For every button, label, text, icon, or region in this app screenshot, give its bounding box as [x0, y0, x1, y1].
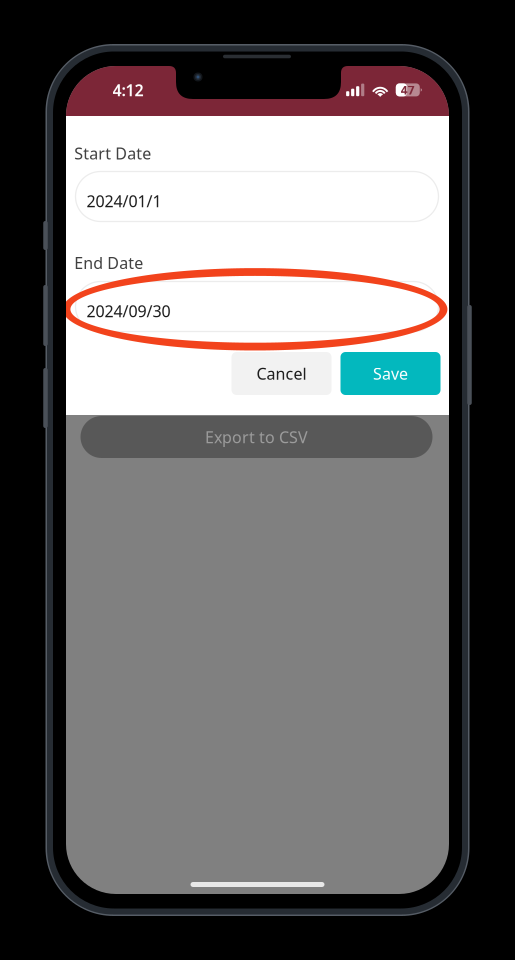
- button[interactable]: 2024/01/1: [75, 171, 438, 221]
- staticText: 2024/09/30: [86, 300, 170, 322]
- staticText: Start Date: [74, 143, 151, 164]
- button[interactable]: Save: [340, 352, 440, 395]
- staticText: 2024/01/1: [86, 190, 161, 212]
- button[interactable]: 2024/09/30: [75, 281, 438, 331]
- button[interactable]: Export to CSV: [80, 416, 432, 458]
- staticText: 47: [401, 82, 415, 98]
- staticText: 4:12: [112, 79, 143, 101]
- staticText: Save: [373, 363, 408, 384]
- button[interactable]: Cancel: [231, 352, 331, 395]
- staticText: Export to CSV: [205, 426, 308, 448]
- staticText: End Date: [74, 252, 143, 273]
- staticText: Cancel: [256, 363, 306, 384]
